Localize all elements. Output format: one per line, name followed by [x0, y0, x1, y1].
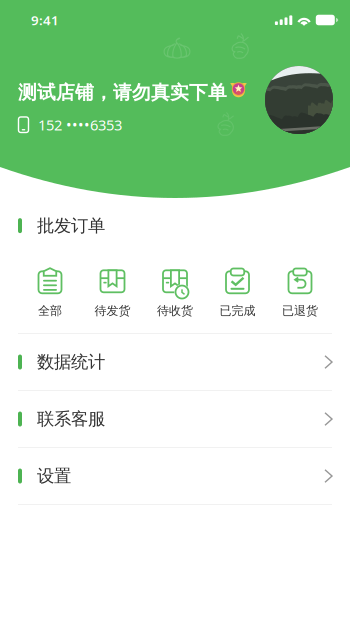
staticText: 152 ••••6353: [38, 115, 122, 134]
button[interactable]: 已退货: [269, 265, 331, 318]
button[interactable]: 数据统计: [0, 333, 350, 390]
button[interactable]: 已完成: [206, 265, 269, 318]
staticText: 9:41: [31, 11, 59, 29]
staticText: 已完成: [219, 303, 255, 318]
button[interactable]: 待发货: [81, 265, 144, 318]
button[interactable]: 联系客服: [0, 390, 350, 447]
button[interactable]: 待收货: [144, 265, 206, 318]
staticText: 待收货: [157, 303, 193, 318]
staticText: 设置: [37, 465, 71, 487]
staticText: 测试店铺，请勿真实下单: [18, 81, 227, 104]
button[interactable]: 全部: [19, 265, 81, 318]
staticText: 已退货: [282, 303, 318, 318]
staticText: 数据统计: [37, 351, 105, 373]
staticText: 联系客服: [37, 408, 105, 430]
staticText: 全部: [38, 303, 62, 318]
staticText: 批发订单: [37, 215, 105, 236]
button[interactable]: 设置: [0, 447, 350, 504]
staticText: 待发货: [94, 303, 130, 318]
